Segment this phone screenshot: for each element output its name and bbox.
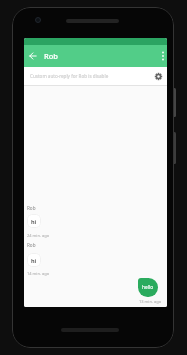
staticText: hi <box>31 257 37 264</box>
button[interactable]: hi <box>27 214 41 228</box>
staticText: hi <box>31 218 37 225</box>
staticText: hello <box>142 284 154 291</box>
staticText: 14 min. ago <box>27 271 50 276</box>
staticText: Rob <box>27 242 36 248</box>
staticText: 13 min. ago <box>139 299 162 304</box>
staticText: Rob <box>44 51 58 61</box>
staticText: Custom auto-reply for Rob is disable <box>30 73 149 79</box>
button[interactable]: hi <box>27 253 41 267</box>
button[interactable]: Custom auto-reply for Rob is disable <box>24 67 167 85</box>
staticText: 24 min. ago <box>27 233 50 238</box>
staticText: Rob <box>27 205 36 211</box>
button[interactable] <box>149 67 167 85</box>
button[interactable]: hello <box>138 278 158 297</box>
button[interactable] <box>157 47 167 64</box>
button[interactable] <box>24 47 41 64</box>
